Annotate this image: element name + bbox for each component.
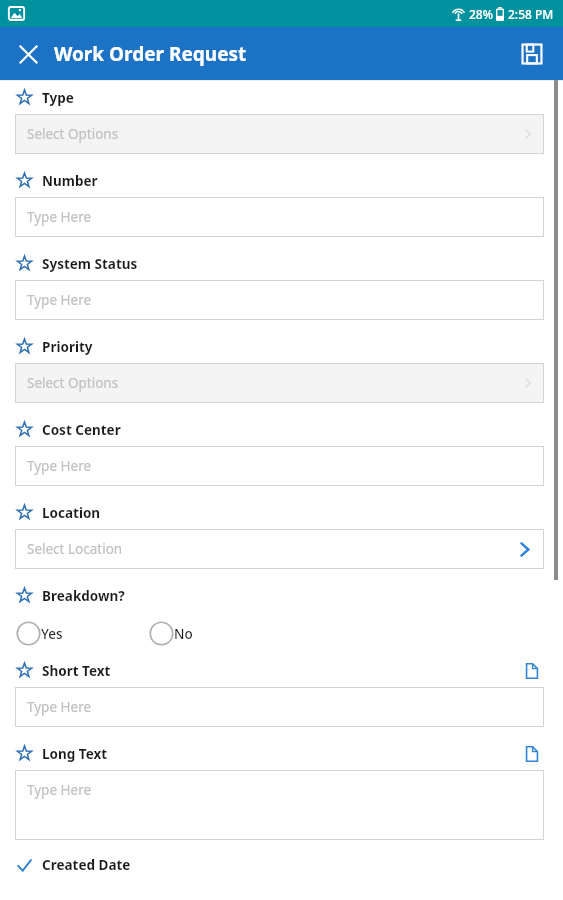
staticText: 28%	[469, 6, 493, 22]
button[interactable]: Type Here	[15, 280, 544, 320]
staticText: Yes	[41, 625, 63, 643]
staticText: Type	[42, 89, 74, 107]
staticText: Created Date	[42, 856, 131, 874]
staticText: Type Here	[27, 781, 92, 799]
staticText: Work Order Request	[54, 41, 247, 67]
button[interactable]: Type Here	[15, 770, 544, 840]
staticText: 2:58 PM	[508, 6, 554, 22]
staticText: Long Text	[42, 745, 108, 763]
staticText: No	[174, 625, 193, 643]
button[interactable]: Select Location	[15, 529, 544, 569]
button[interactable]: Yes	[16, 621, 63, 646]
button[interactable]: Notes for Long Text	[519, 741, 545, 767]
button[interactable]: Type Here	[15, 446, 544, 486]
button[interactable]: Notes for Short Text	[519, 658, 545, 684]
staticText: Location	[42, 504, 101, 522]
staticText: Type Here	[27, 291, 92, 309]
staticText: Type Here	[27, 208, 92, 226]
staticText: Breakdown?	[42, 587, 125, 605]
staticText: Select Options	[27, 374, 119, 392]
button[interactable]: Save	[511, 33, 553, 75]
staticText: Type Here	[27, 457, 92, 475]
staticText: Cost Center	[42, 421, 121, 439]
staticText: Number	[42, 172, 98, 190]
staticText: Select Options	[27, 125, 119, 143]
button[interactable]: Close	[8, 34, 48, 74]
staticText: Type Here	[27, 698, 92, 716]
staticText: Priority	[42, 338, 93, 356]
button[interactable]: Type Here	[15, 687, 544, 727]
button[interactable]: Select Options	[15, 114, 544, 154]
button[interactable]: No	[149, 621, 193, 646]
button[interactable]: Type Here	[15, 197, 544, 237]
staticText: System Status	[42, 255, 138, 273]
button[interactable]: Select Options	[15, 363, 544, 403]
staticText: Select Location	[27, 540, 123, 558]
staticText: Short Text	[42, 662, 111, 680]
